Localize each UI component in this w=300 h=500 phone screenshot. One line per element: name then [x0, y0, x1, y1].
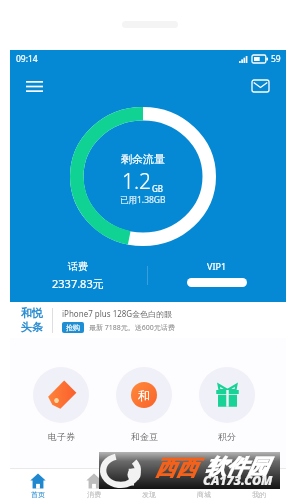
- staticText: GB: [152, 183, 164, 194]
- button[interactable]: Messages: [247, 73, 273, 99]
- staticText: iPhone7 plus 128G金色白的眼: [62, 308, 173, 319]
- button[interactable]: 电子券: [33, 367, 89, 442]
- staticText: 商城: [197, 490, 211, 499]
- staticText: 和: [138, 388, 150, 403]
- button[interactable]: 和悦: [10, 302, 286, 338]
- staticText: CA173.COM: [203, 472, 273, 489]
- staticText: 西西: [155, 455, 197, 481]
- button[interactable]: 我的: [231, 470, 286, 499]
- staticText: 59: [271, 53, 281, 65]
- button[interactable]: 和: [116, 367, 172, 442]
- staticText: 我的: [252, 490, 266, 499]
- staticText: 头条: [21, 320, 43, 334]
- button[interactable]: 发现: [121, 470, 176, 499]
- staticText: 电子券: [48, 431, 75, 442]
- staticText: 和金豆: [131, 431, 158, 442]
- button[interactable]: VIP1: [171, 252, 263, 287]
- button[interactable]: 首页: [10, 470, 66, 499]
- button[interactable]: 积分: [199, 367, 255, 442]
- staticText: 发现: [142, 490, 156, 499]
- staticText: 2337.83元: [52, 276, 104, 291]
- button[interactable]: 消费: [66, 470, 121, 499]
- staticText: 和悦: [21, 306, 43, 320]
- staticText: 抢购: [66, 323, 80, 332]
- staticText: VIP1: [207, 260, 227, 272]
- button[interactable]: Menu: [21, 73, 47, 99]
- staticText: 最新 7188元。送600元话费: [89, 323, 175, 333]
- staticText: 积分: [218, 431, 236, 442]
- staticText: 软件园: [205, 454, 268, 480]
- staticText: 首页: [31, 490, 45, 499]
- staticText: 已用1.38GB: [120, 194, 166, 206]
- staticText: 消费: [87, 490, 101, 499]
- button[interactable]: 话费: [32, 252, 124, 291]
- staticText: 话费: [68, 260, 88, 273]
- staticText: 1.2: [122, 167, 152, 196]
- staticText: 剩余流量: [121, 152, 165, 166]
- button[interactable]: 商城: [176, 470, 231, 499]
- staticText: 09:14: [16, 53, 38, 65]
